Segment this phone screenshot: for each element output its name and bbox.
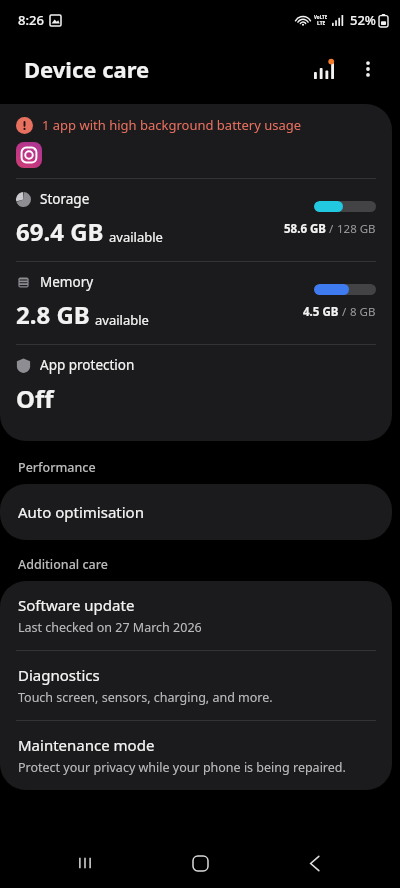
staticText: / xyxy=(339,304,350,320)
staticText: 8:26 xyxy=(18,11,44,29)
staticText: available xyxy=(95,311,149,329)
button[interactable]: More options xyxy=(346,47,390,91)
button[interactable]: Usage statistics xyxy=(302,47,346,91)
staticText: Maintenance mode xyxy=(18,735,155,755)
staticText: VoLTE xyxy=(314,14,328,20)
button[interactable]: Auto optimisation xyxy=(0,484,392,540)
button[interactable]: Instagram xyxy=(16,142,42,168)
staticText: Device care xyxy=(24,54,150,84)
button[interactable]: Home xyxy=(170,838,230,888)
staticText: 58.6 GB xyxy=(284,221,326,237)
staticText: 128 GB xyxy=(337,221,376,237)
staticText: Diagnostics xyxy=(18,665,100,685)
staticText: 4.5 GB xyxy=(303,304,339,320)
button[interactable]: Maintenance mode xyxy=(0,721,392,790)
staticText: Storage xyxy=(40,190,90,208)
staticText: App protection xyxy=(40,356,135,374)
staticText: 1 app with high background battery usage xyxy=(42,116,302,134)
staticText: Memory xyxy=(40,273,94,291)
staticText: 52% xyxy=(350,11,376,29)
button[interactable]: Recent apps xyxy=(55,838,115,888)
button[interactable]: Storage xyxy=(0,179,392,261)
button[interactable]: Software update xyxy=(0,581,392,650)
staticText: Last checked on 27 March 2026 xyxy=(18,619,202,636)
staticText: LTE xyxy=(317,20,326,27)
staticText: / xyxy=(326,221,337,237)
staticText: Auto optimisation xyxy=(18,502,144,522)
staticText: Software update xyxy=(18,595,135,615)
staticText: available xyxy=(109,228,163,246)
staticText: 2.8 GB xyxy=(16,298,90,331)
staticText: Touch screen, sensors, charging, and mor… xyxy=(18,689,273,706)
button[interactable]: 1 app with high background battery usage xyxy=(0,104,392,178)
staticText: 69.4 GB xyxy=(16,215,104,248)
button[interactable]: Back xyxy=(285,838,345,888)
button[interactable]: Memory xyxy=(0,262,392,344)
staticText: Off xyxy=(16,382,54,415)
staticText: 8 GB xyxy=(350,304,376,320)
staticText: Additional care xyxy=(18,556,108,573)
button[interactable]: Diagnostics xyxy=(0,651,392,720)
staticText: Protect your privacy while your phone is… xyxy=(18,759,346,776)
button[interactable]: App protection xyxy=(0,345,392,441)
staticText: Performance xyxy=(18,459,96,476)
